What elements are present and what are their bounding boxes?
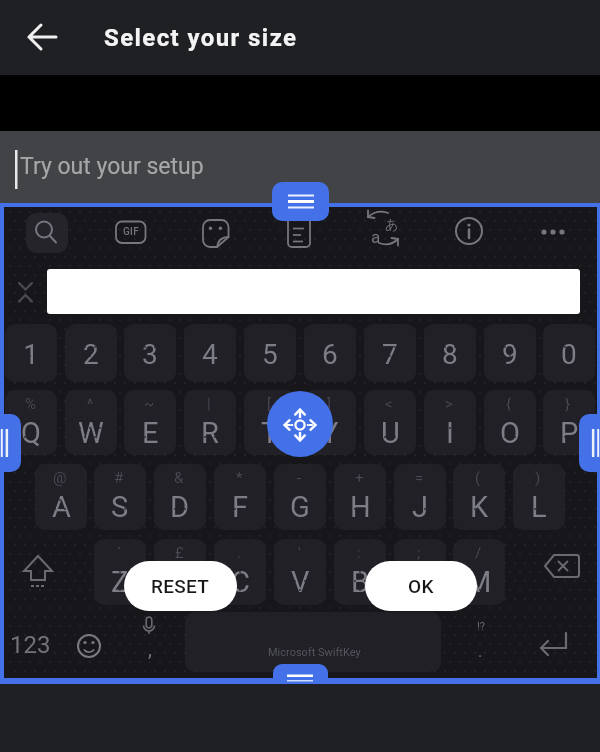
staticText: U (381, 416, 400, 450)
staticText: ' (298, 544, 301, 562)
staticText: A (52, 490, 71, 524)
staticText: 9 (502, 338, 518, 371)
button[interactable] (26, 213, 68, 253)
staticText: 3 (142, 338, 158, 371)
button[interactable] (185, 612, 441, 672)
staticText: Q (21, 416, 41, 450)
button[interactable]: O (484, 390, 536, 455)
staticText: 1 (23, 338, 39, 371)
staticText: , (148, 637, 152, 660)
staticText: = (415, 469, 424, 487)
staticText: Z (111, 565, 129, 599)
button[interactable]: Z (94, 539, 146, 605)
button[interactable]: 4 (184, 324, 236, 382)
button[interactable]: P (543, 390, 595, 455)
button[interactable]: R (184, 390, 236, 455)
staticText: 5 (262, 338, 278, 371)
staticText: ; (417, 544, 421, 562)
button[interactable]: H (334, 464, 386, 530)
staticText: : (357, 544, 361, 562)
staticText: Y (321, 416, 339, 450)
staticText: @ (53, 469, 67, 487)
staticText: N (410, 565, 431, 599)
button[interactable]: B (334, 539, 386, 605)
button[interactable]: J (394, 464, 446, 530)
button[interactable]: Y (304, 390, 356, 455)
button[interactable]: I (424, 390, 476, 455)
staticText: J (412, 490, 429, 524)
staticText: W (78, 416, 104, 450)
staticText: ) (535, 469, 541, 487)
staticText: > (445, 395, 453, 413)
button[interactable]: T (244, 390, 296, 455)
button[interactable]: 1 (5, 324, 57, 382)
button[interactable]: A (35, 464, 87, 530)
staticText: !? (477, 620, 486, 633)
button[interactable]: 8 (424, 324, 476, 382)
button[interactable]: OK (365, 561, 477, 611)
button[interactable] (18, 13, 66, 61)
button[interactable]: S (94, 464, 146, 530)
button[interactable]: C (214, 539, 266, 605)
button[interactable]: E (124, 390, 176, 455)
staticText: < (385, 395, 393, 413)
staticText: % (25, 395, 36, 413)
staticText: D (170, 490, 190, 524)
staticText: B (351, 565, 370, 599)
button[interactable] (579, 414, 600, 472)
staticText: H (350, 490, 371, 524)
button[interactable]: Q (5, 390, 57, 455)
staticText: P (560, 416, 579, 450)
staticText: X (171, 565, 190, 599)
button[interactable]: V (274, 539, 326, 605)
staticText: / (475, 544, 482, 562)
button[interactable]: X (154, 539, 206, 605)
staticText: { (506, 395, 512, 413)
staticText: £ (175, 544, 184, 562)
staticText: | (207, 395, 211, 413)
staticText: . (478, 642, 483, 661)
staticText: Microsoft SwiftKey (268, 646, 361, 659)
button[interactable]: F (214, 464, 266, 530)
staticText: E (142, 416, 159, 450)
button[interactable]: U (364, 390, 416, 455)
staticText: L (531, 490, 547, 524)
staticText: a (371, 227, 381, 247)
staticText: & (174, 469, 184, 487)
button[interactable]: D (154, 464, 206, 530)
button[interactable]: W (65, 390, 117, 455)
button[interactable] (273, 664, 328, 683)
staticText: O (500, 416, 520, 450)
staticText: 0 (561, 338, 577, 371)
button[interactable]: RESET (124, 561, 237, 611)
button[interactable]: L (513, 464, 565, 530)
button[interactable] (267, 391, 333, 457)
staticText: [ (267, 395, 271, 413)
staticText: T (261, 416, 279, 450)
button[interactable]: 6 (304, 324, 356, 382)
button[interactable]: G (274, 464, 326, 530)
button[interactable]: 2 (65, 324, 117, 382)
button[interactable]: 9 (484, 324, 536, 382)
button[interactable]: N (394, 539, 446, 605)
button[interactable]: K (453, 464, 505, 530)
staticText: K (470, 490, 489, 524)
staticText: C (231, 565, 250, 599)
button[interactable]: M (453, 539, 505, 605)
button[interactable] (272, 182, 329, 221)
button[interactable] (0, 414, 21, 472)
staticText: あ (385, 216, 399, 232)
button[interactable]: 5 (244, 324, 296, 382)
staticText: * (236, 469, 243, 487)
staticText: } (565, 395, 571, 413)
staticText: G (290, 490, 310, 524)
button[interactable]: 0 (543, 324, 595, 382)
staticText: Select your size (104, 24, 298, 52)
staticText: OK (408, 575, 434, 597)
staticText: ~ (144, 395, 155, 413)
button[interactable]: 3 (124, 324, 176, 382)
staticText: 6 (322, 338, 338, 371)
staticText: I (446, 416, 454, 450)
button[interactable]: 7 (364, 324, 416, 382)
staticText: 4 (202, 338, 218, 371)
